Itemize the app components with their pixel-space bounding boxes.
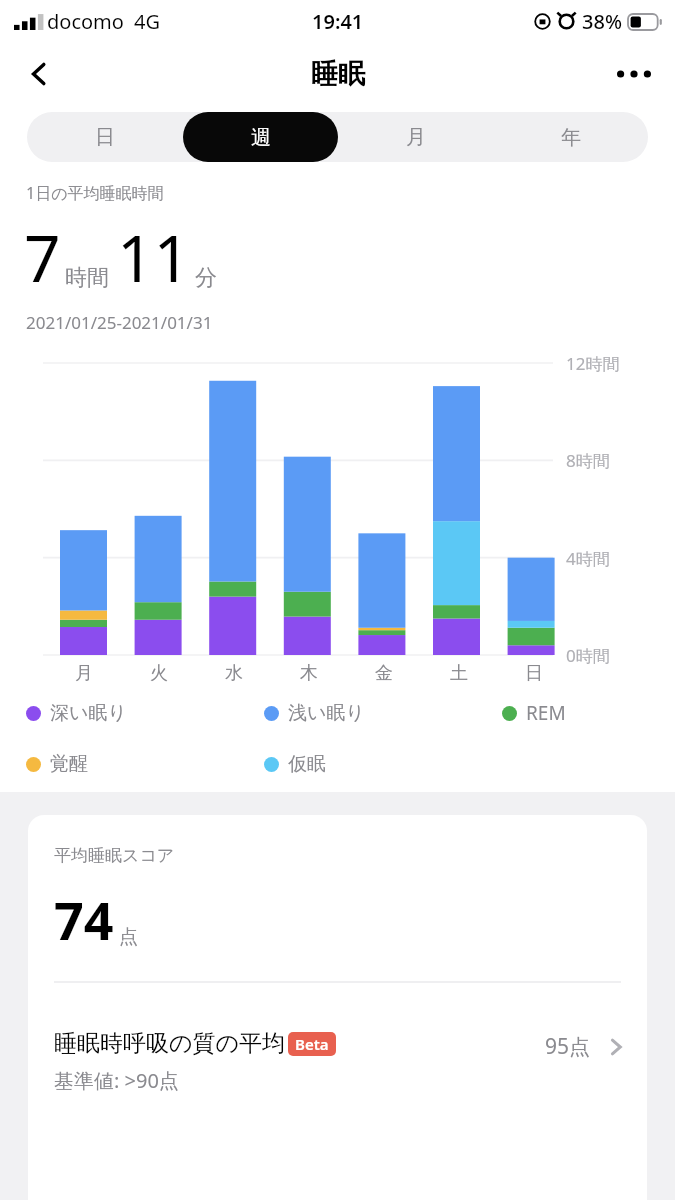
staticText: 基準値: >90点 <box>54 1067 179 1094</box>
staticText: 年 <box>561 125 581 150</box>
staticText: 分 <box>195 264 217 292</box>
staticText: 74 <box>54 884 114 955</box>
button[interactable]: Back <box>14 49 64 99</box>
staticText: 睡眠時呼吸の質の平均 <box>54 1029 286 1058</box>
staticText: 浅い眠り <box>288 701 365 725</box>
staticText: 12時間 <box>566 352 620 375</box>
staticText: REM <box>526 700 566 726</box>
staticText: docomo <box>47 8 124 35</box>
staticText: Beta <box>295 1034 329 1054</box>
staticText: 仮眠 <box>288 752 326 776</box>
staticText: 点 <box>119 925 138 949</box>
staticText: 4時間 <box>566 547 610 570</box>
button[interactable]: 週 <box>183 112 338 162</box>
staticText: 月 <box>75 662 93 685</box>
staticText: 2021/01/25-2021/01/31 <box>26 311 213 334</box>
button[interactable]: 月 <box>338 112 493 162</box>
staticText: 日 <box>525 662 543 685</box>
staticText: 週 <box>251 125 271 150</box>
button[interactable]: 日 <box>27 112 183 162</box>
staticText: 平均睡眠スコア <box>54 845 175 866</box>
button[interactable]: 年 <box>493 112 648 162</box>
staticText: 0時間 <box>566 644 610 667</box>
staticText: 覚醒 <box>50 752 88 776</box>
staticText: 時間 <box>65 264 109 292</box>
staticText: 7 <box>24 214 61 301</box>
button[interactable]: 睡眠時呼吸の質の平均 <box>28 1029 647 1094</box>
staticText: 19:41 <box>312 8 364 35</box>
staticText: 38% <box>582 8 622 35</box>
staticText: 火 <box>150 662 168 685</box>
staticText: 土 <box>450 662 468 685</box>
staticText: 8時間 <box>566 449 610 472</box>
staticText: 金 <box>375 662 393 685</box>
staticText: 日 <box>95 125 115 150</box>
staticText: 月 <box>406 125 426 150</box>
staticText: 11 <box>117 214 191 301</box>
staticText: 睡眠 <box>311 57 365 91</box>
staticText: 95点 <box>545 1032 591 1061</box>
staticText: 水 <box>225 662 243 685</box>
staticText: 深い眠り <box>50 701 127 725</box>
staticText: 木 <box>300 662 318 685</box>
staticText: 1日の平均睡眠時間 <box>26 182 164 204</box>
staticText: 4G <box>134 8 160 35</box>
button[interactable]: More options <box>609 49 659 99</box>
